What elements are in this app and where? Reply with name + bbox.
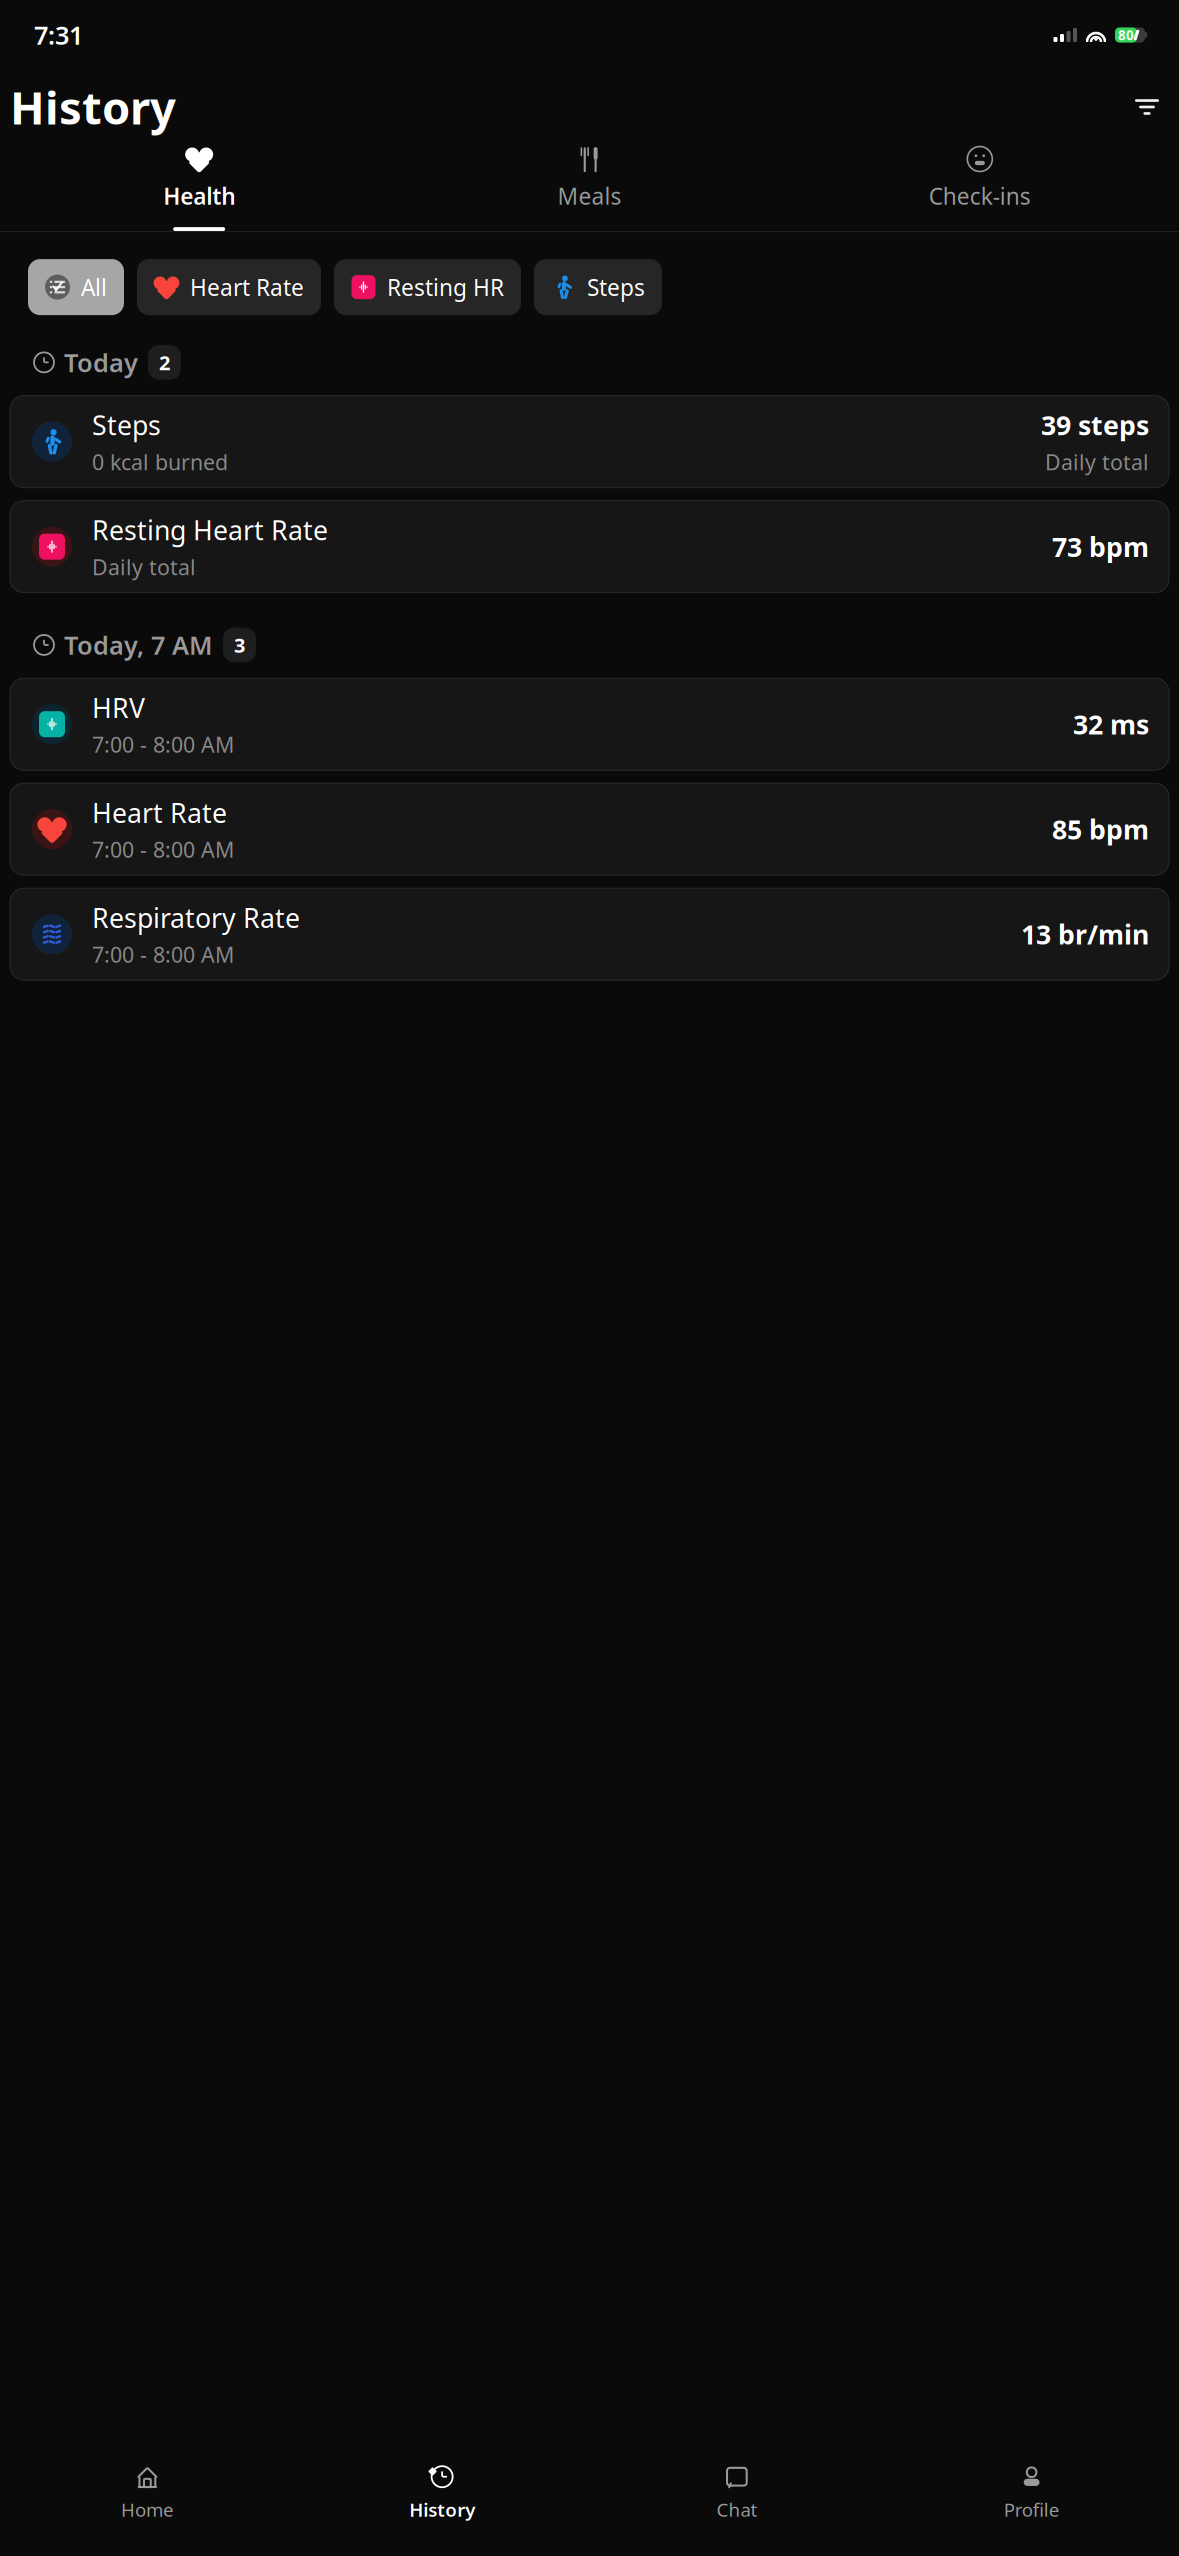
staticText: Steps [587,272,645,302]
staticText: HRV [92,690,145,725]
button[interactable]: Resting HR [334,259,521,315]
staticText: Heart Rate [190,272,304,302]
staticText: All [81,272,107,302]
button[interactable]: All [28,259,124,315]
button[interactable]: Filter [1125,85,1169,129]
staticText: Daily total [92,553,196,581]
button[interactable]: Steps [10,396,1169,488]
staticText: 0 kcal burned [92,448,228,476]
button[interactable]: Profile [884,2454,1179,2522]
staticText: 2 [159,349,170,376]
button[interactable]: Chat [589,2454,884,2522]
staticText: History [10,77,176,137]
button[interactable]: Home [0,2454,295,2522]
staticText: 7:31 [34,18,83,52]
button[interactable]: History [295,2454,590,2522]
staticText: 3 [234,632,245,658]
staticText: Resting Heart Rate [92,512,328,548]
button[interactable]: Check-ins [785,134,1175,231]
button[interactable]: Heart Rate [137,259,321,315]
staticText: History [409,2497,475,2522]
button[interactable]: Health [4,134,394,231]
staticText: 7:00 - 8:00 AM [92,835,234,864]
button[interactable]: Meals [394,134,785,231]
staticText: Meals [557,181,621,211]
staticText: Steps [92,407,161,443]
staticText: Profile [1004,2497,1060,2522]
staticText: Respiratory Rate [92,900,300,935]
button[interactable]: Resting Heart Rate [10,501,1169,593]
staticText: 73 bpm [1052,529,1149,564]
staticText: 7:00 - 8:00 AM [92,730,234,759]
staticText: Chat [716,2497,757,2522]
staticText: 80 [1118,26,1134,44]
staticText: Today [64,346,138,379]
staticText: 32 ms [1073,706,1149,742]
button[interactable]: HRV [10,678,1169,770]
staticText: Check-ins [929,181,1031,211]
button[interactable]: Steps [534,259,662,315]
staticText: 7:00 - 8:00 AM [92,940,234,969]
button[interactable]: Heart Rate [10,783,1169,875]
staticText: Daily total [1045,448,1149,476]
staticText: Heart Rate [92,795,227,830]
staticText: Today, 7 AM [64,628,213,662]
staticText: 13 br/min [1021,916,1149,952]
staticText: 85 bpm [1052,811,1149,847]
staticText: Home [121,2497,174,2522]
staticText: Resting HR [387,272,504,302]
staticText: Health [163,181,235,211]
button[interactable]: Respiratory Rate [10,888,1169,980]
staticText: 39 steps [1041,407,1149,443]
